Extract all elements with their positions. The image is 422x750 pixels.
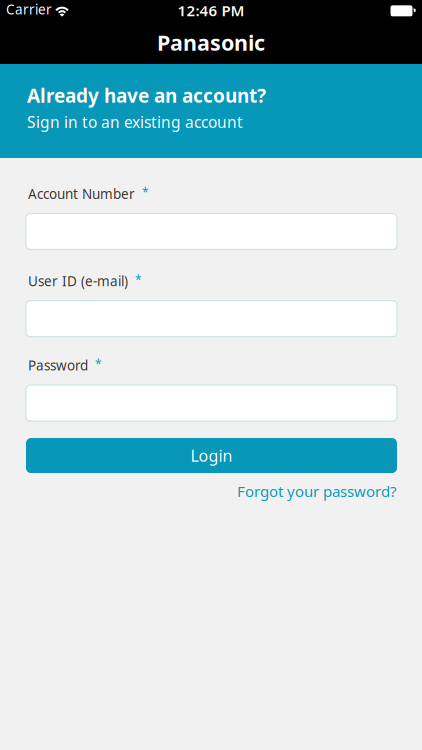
staticText: * (135, 271, 142, 288)
staticText: Sign in to an existing account (27, 111, 243, 132)
staticText: Panasonic (157, 28, 265, 57)
button[interactable]: Account Number (26, 213, 397, 249)
staticText: * (142, 184, 149, 200)
staticText: Login (190, 445, 232, 466)
button[interactable]: User ID (e-mail) (26, 301, 397, 337)
staticText: 12:46 PM (177, 0, 244, 20)
staticText: User ID (e-mail) (28, 272, 128, 290)
staticText: * (95, 356, 102, 372)
staticText: Already have an account? (27, 82, 266, 108)
staticText: Account Number (28, 184, 135, 203)
staticText: Forgot your password? (237, 481, 397, 501)
button[interactable]: Password (26, 385, 397, 421)
button[interactable]: Forgot your password? (237, 481, 397, 501)
staticText: Carrier (6, 0, 52, 19)
staticText: Password (28, 356, 88, 375)
button[interactable]: Login (26, 438, 397, 473)
